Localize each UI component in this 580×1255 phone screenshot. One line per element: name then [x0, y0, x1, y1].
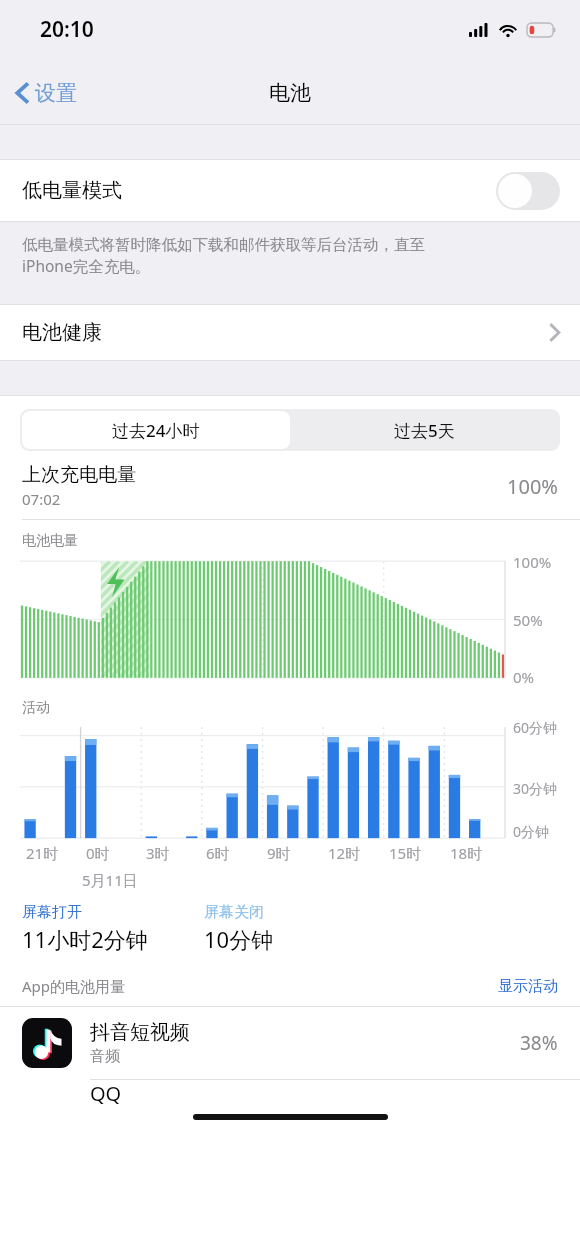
staticText: 过去5天: [394, 419, 455, 442]
button[interactable]: 设置: [0, 74, 89, 112]
button[interactable]: 抖音短视频: [0, 1007, 580, 1079]
staticText: 6时: [206, 843, 230, 863]
staticText: 38%: [520, 1030, 558, 1056]
staticText: 50%: [513, 610, 543, 630]
staticText: 0时: [86, 843, 110, 863]
staticText: 屏幕打开: [22, 903, 82, 922]
staticText: 100%: [513, 552, 552, 572]
staticText: 30分钟: [513, 779, 558, 798]
staticText: App的电池用量: [22, 976, 126, 996]
button[interactable]: 过去24小时: [22, 411, 290, 449]
staticText: 活动: [22, 699, 50, 717]
staticText: 100%: [507, 473, 558, 500]
staticText: 9时: [267, 843, 291, 863]
staticText: 07:02: [22, 489, 61, 509]
staticText: 屏幕关闭: [204, 903, 264, 922]
staticText: 电池: [269, 80, 311, 106]
staticText: 20:10: [40, 15, 94, 44]
staticText: 电池健康: [22, 320, 102, 345]
staticText: 音频: [90, 1047, 120, 1066]
other: 进入: [549, 323, 560, 342]
staticText: 低电量模式将暂时降低如下载和邮件获取等后台活动，直至 iPhone完全充电。: [22, 235, 425, 277]
button[interactable]: 低电量模式: [0, 160, 580, 221]
staticText: 18时: [450, 843, 483, 863]
staticText: 显示活动: [498, 977, 558, 996]
button[interactable]: 电池健康: [0, 305, 580, 360]
button[interactable]: 低电量模式开关: [496, 172, 560, 210]
staticText: 0%: [513, 667, 535, 687]
staticText: 3时: [146, 843, 170, 863]
staticText: 12时: [328, 843, 361, 863]
staticText: 低电量模式: [22, 178, 122, 203]
button[interactable]: QQ: [0, 1080, 580, 1120]
button[interactable]: 过去5天: [290, 411, 558, 449]
staticText: 10分钟: [204, 924, 274, 954]
staticText: 抖音短视频: [90, 1020, 190, 1045]
staticText: 11小时2分钟: [22, 924, 148, 954]
staticText: 60分钟: [513, 718, 558, 737]
staticText: 21时: [26, 843, 59, 863]
staticText: 15时: [389, 843, 422, 863]
staticText: 0分钟: [513, 822, 550, 841]
staticText: 上次充电电量: [22, 463, 136, 487]
button[interactable]: 显示活动: [498, 977, 558, 996]
staticText: 过去24小时: [112, 419, 200, 442]
staticText: 设置: [35, 80, 77, 106]
staticText: QQ: [90, 1080, 122, 1107]
staticText: 5月11日: [82, 870, 138, 890]
staticText: 电池电量: [22, 532, 78, 550]
